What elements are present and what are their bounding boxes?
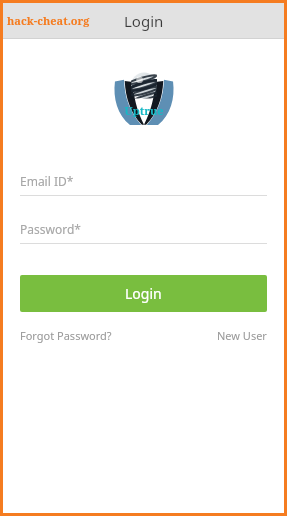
staticText: Login [125,284,162,303]
button[interactable]: New User [217,328,267,343]
staticText: Uptrue [124,103,164,118]
button[interactable]: Password* [20,218,267,244]
button[interactable]: Login [20,275,267,312]
staticText: Email ID* [20,173,74,189]
staticText: Login [124,11,164,31]
staticText: New User [217,328,267,343]
staticText: Password* [20,221,81,237]
button[interactable]: Email ID* [20,170,267,196]
other: App logo [109,62,179,132]
staticText: hack-cheat.org [7,13,90,28]
button[interactable]: Forgot Password? [20,328,112,343]
staticText: Forgot Password? [20,328,112,343]
